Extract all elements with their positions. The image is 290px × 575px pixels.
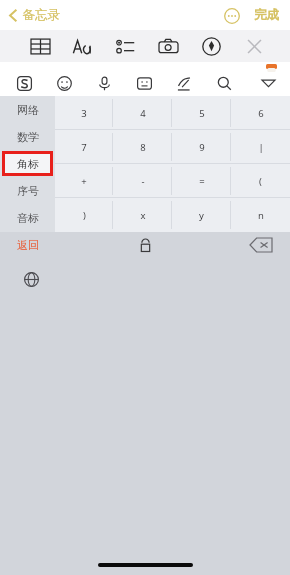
staticText: x <box>140 209 146 222</box>
button[interactable]: y <box>172 198 231 232</box>
staticText: 完成 <box>254 7 279 23</box>
staticText: 网络 <box>17 103 39 117</box>
button[interactable]: Emoji <box>52 71 76 95</box>
button[interactable]: = <box>172 164 231 198</box>
button[interactable]: 返回 <box>0 232 55 258</box>
staticText: - <box>141 175 145 188</box>
staticText: n <box>258 209 264 222</box>
button[interactable]: Camera <box>154 32 182 60</box>
button[interactable]: Delete <box>244 234 278 256</box>
button[interactable]: 5 <box>172 96 231 130</box>
staticText: 序号 <box>17 184 39 198</box>
button[interactable]: | <box>231 130 290 164</box>
button[interactable]: 9 <box>172 130 231 164</box>
staticText: ) <box>83 209 86 222</box>
button[interactable]: ) <box>55 198 113 232</box>
button[interactable]: Search <box>212 71 236 95</box>
button[interactable]: 序号 <box>0 177 55 204</box>
button[interactable]: 6 <box>231 96 290 130</box>
staticText: 6 <box>258 107 264 120</box>
staticText: y <box>199 209 204 222</box>
button[interactable]: Stickers <box>132 71 156 95</box>
button[interactable]: x <box>113 198 172 232</box>
button[interactable]: + <box>55 164 113 198</box>
button[interactable]: Switch keyboard <box>18 266 44 292</box>
staticText: | <box>258 141 264 154</box>
button[interactable]: 备忘录 <box>0 3 68 27</box>
button[interactable]: 8 <box>113 130 172 164</box>
staticText: 备忘录 <box>22 7 60 23</box>
staticText: 音标 <box>17 211 39 225</box>
staticText: + <box>81 175 87 188</box>
button[interactable]: Voice input <box>92 71 116 95</box>
button[interactable]: 4 <box>113 96 172 130</box>
staticText: 返回 <box>17 238 39 252</box>
staticText: = <box>199 175 205 188</box>
button[interactable]: Collapse <box>252 72 284 94</box>
button[interactable]: 音标 <box>0 204 55 231</box>
staticText: 4 <box>140 107 146 120</box>
button[interactable]: Markup <box>197 32 225 60</box>
button[interactable]: Table <box>26 32 54 60</box>
button[interactable]: Sogou keyboard <box>12 71 36 95</box>
staticText: 数学 <box>17 130 39 144</box>
button[interactable]: 完成 <box>251 3 282 27</box>
button[interactable]: More options <box>221 5 242 26</box>
staticText: 7 <box>81 141 87 154</box>
staticText: 5 <box>199 107 205 120</box>
button[interactable]: Handwriting <box>172 71 196 95</box>
button[interactable]: n <box>231 198 290 232</box>
staticText: 3 <box>81 107 87 120</box>
button[interactable]: Checklist <box>111 32 139 60</box>
button[interactable]: 数学 <box>0 123 55 150</box>
staticText: ( <box>259 175 262 188</box>
button[interactable]: 角标 <box>0 150 55 177</box>
staticText: 角标 <box>17 157 39 171</box>
button[interactable]: 3 <box>55 96 113 130</box>
button[interactable]: - <box>113 164 172 198</box>
staticText: 8 <box>140 141 146 154</box>
button[interactable]: Shift lock <box>130 232 160 258</box>
button[interactable]: ( <box>231 164 290 198</box>
button[interactable]: 网络 <box>0 96 55 123</box>
button[interactable]: Close <box>240 32 268 60</box>
button[interactable]: Text format <box>68 32 96 60</box>
button[interactable]: 7 <box>55 130 113 164</box>
staticText: 9 <box>199 141 205 154</box>
